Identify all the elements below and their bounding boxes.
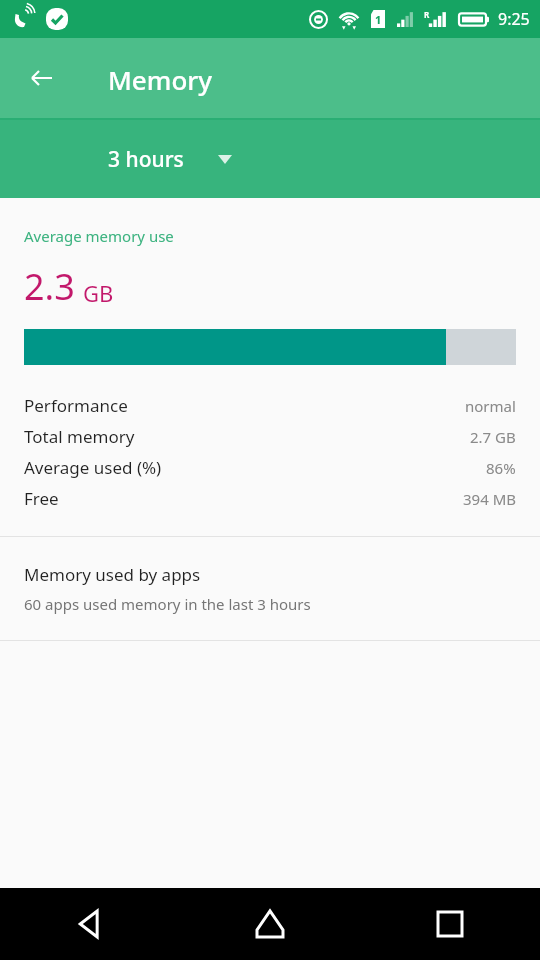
staticText: Performance xyxy=(24,394,128,417)
button[interactable]: Total memory xyxy=(0,421,540,452)
button[interactable]: Home xyxy=(180,888,360,960)
staticText: Memory xyxy=(108,62,213,97)
staticText: 394 MB xyxy=(463,489,516,509)
staticText: Free xyxy=(24,487,59,510)
button[interactable]: Recent apps xyxy=(360,888,540,960)
staticText: 1 xyxy=(375,12,382,27)
staticText: 60 apps used memory in the last 3 hours xyxy=(24,594,311,614)
staticText: Total memory xyxy=(24,425,135,448)
staticText: 2.7 GB xyxy=(470,427,516,447)
staticText: R xyxy=(424,9,430,20)
staticText: Average used (%) xyxy=(24,456,162,479)
button[interactable]: Back xyxy=(0,888,180,960)
staticText: 9:25 xyxy=(498,8,530,30)
staticText: 2.3 xyxy=(24,262,75,311)
staticText: Memory used by apps xyxy=(24,563,201,586)
staticText: 3 hours xyxy=(108,145,184,174)
staticText: GB xyxy=(83,278,114,308)
button[interactable]: Average used (%) xyxy=(0,452,540,483)
button[interactable]: Free xyxy=(0,483,540,514)
button[interactable]: Performance xyxy=(0,390,540,421)
staticText: Average memory use xyxy=(24,226,174,246)
button[interactable]: Back xyxy=(18,54,66,102)
staticText: 86% xyxy=(486,458,516,478)
button[interactable]: 3 hours xyxy=(96,137,244,182)
staticText: normal xyxy=(465,396,516,416)
button[interactable]: Memory used by apps xyxy=(0,537,540,640)
